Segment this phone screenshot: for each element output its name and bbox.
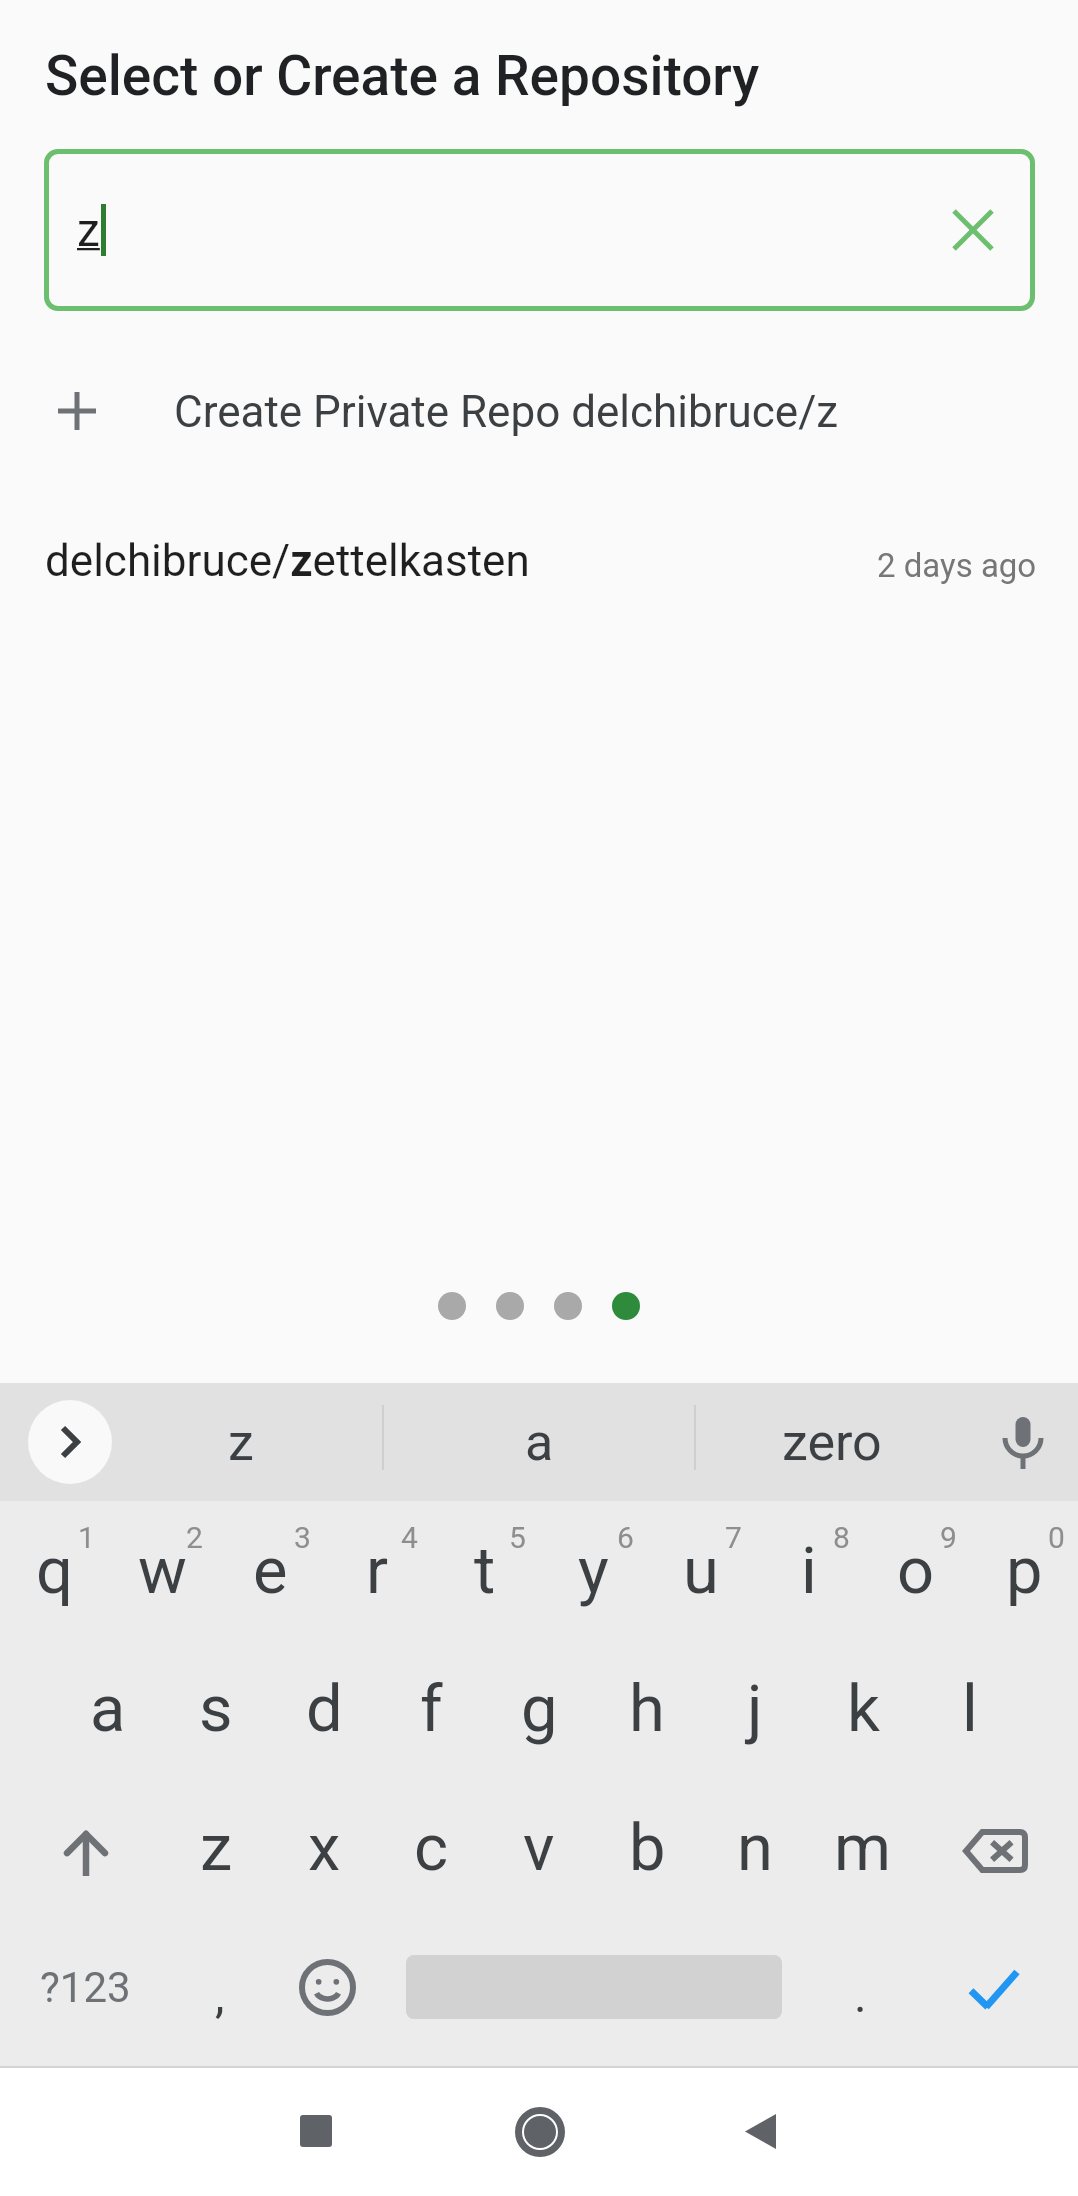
button[interactable]: Back — [692, 2067, 828, 2195]
button[interactable]: Clear search — [931, 188, 1015, 272]
staticText: j — [747, 1671, 763, 1747]
button[interactable]: a — [54, 1640, 162, 1778]
button[interactable]: z — [118, 1383, 364, 1501]
staticText: 2 — [186, 1520, 203, 1555]
button[interactable]: i — [755, 1502, 863, 1640]
button[interactable]: c — [377, 1779, 485, 1917]
staticText: g — [521, 1671, 558, 1747]
staticText: delchibruce/zettelkasten — [45, 535, 530, 587]
button[interactable]: ?123 — [0, 1918, 170, 2056]
button[interactable]: , — [170, 1918, 270, 2056]
staticText: n — [737, 1810, 773, 1886]
button[interactable]: Recent apps — [248, 2067, 384, 2195]
staticText: t — [474, 1533, 496, 1609]
button[interactable]: x — [270, 1779, 378, 1917]
button[interactable]: z — [162, 1779, 270, 1917]
staticText: 2 days ago — [877, 546, 1037, 585]
staticText: f — [420, 1671, 443, 1747]
staticText: q — [36, 1533, 73, 1609]
button[interactable]: g — [485, 1640, 593, 1778]
button[interactable]: q — [0, 1502, 108, 1640]
button[interactable]: Emoji — [274, 1918, 380, 2056]
button[interactable]: v — [485, 1779, 593, 1917]
button[interactable]: d — [270, 1640, 378, 1778]
staticText: a — [90, 1671, 126, 1747]
staticText: 1 — [78, 1520, 95, 1555]
staticText: 0 — [1048, 1520, 1065, 1555]
staticText: 9 — [940, 1520, 957, 1555]
staticText: s — [199, 1671, 233, 1747]
button[interactable]: Page 1 — [438, 1292, 466, 1320]
button[interactable]: j — [701, 1640, 809, 1778]
button[interactable]: o — [862, 1502, 970, 1640]
button[interactable]: t — [431, 1502, 539, 1640]
staticText: , — [215, 1967, 225, 2023]
staticText: 5 — [509, 1520, 526, 1555]
staticText: 4 — [401, 1520, 418, 1555]
staticText: u — [683, 1533, 719, 1609]
button[interactable]: a — [384, 1383, 694, 1501]
staticText: d — [306, 1671, 343, 1747]
staticText: k — [847, 1671, 880, 1747]
button[interactable]: z — [44, 149, 1035, 311]
staticText: b — [629, 1810, 666, 1886]
staticText: y — [578, 1533, 609, 1609]
staticText: 3 — [294, 1520, 311, 1555]
button[interactable]: delchibruce/zettelkasten — [0, 516, 1078, 606]
staticText: ?123 — [40, 1963, 131, 2012]
button[interactable]: Backspace — [916, 1779, 1078, 1917]
staticText: c — [414, 1810, 449, 1886]
staticText: i — [801, 1533, 817, 1609]
staticText: 8 — [833, 1520, 850, 1555]
staticText: Create Private Repo delchibruce/z — [174, 386, 839, 438]
button[interactable]: l — [916, 1640, 1024, 1778]
button[interactable]: b — [593, 1779, 701, 1917]
staticText: 7 — [725, 1520, 742, 1555]
staticText: o — [897, 1533, 935, 1609]
button[interactable]: m — [809, 1779, 917, 1917]
button[interactable]: h — [593, 1640, 701, 1778]
staticText: v — [523, 1810, 555, 1886]
button[interactable]: . — [808, 1918, 912, 2056]
staticText: e — [253, 1533, 288, 1609]
staticText: x — [308, 1810, 341, 1886]
staticText: a — [525, 1412, 554, 1473]
button[interactable]: zero — [696, 1383, 968, 1501]
button[interactable]: r — [323, 1502, 431, 1640]
staticText: m — [834, 1810, 892, 1886]
button[interactable]: Page 4 — [612, 1292, 640, 1320]
button[interactable]: k — [809, 1640, 917, 1778]
button[interactable]: Enter — [912, 1918, 1078, 2056]
staticText: 6 — [617, 1520, 634, 1555]
staticText: Select or Create a Repository — [45, 44, 760, 108]
button[interactable]: p — [970, 1502, 1078, 1640]
button[interactable]: Page 3 — [554, 1292, 582, 1320]
button[interactable]: Space — [380, 1918, 808, 2056]
staticText: z — [200, 1810, 233, 1886]
button[interactable]: Expand suggestions — [28, 1400, 112, 1484]
button[interactable]: s — [162, 1640, 270, 1778]
button[interactable]: f — [377, 1640, 485, 1778]
staticText: r — [366, 1533, 389, 1609]
staticText: z — [228, 1412, 254, 1473]
staticText: . — [854, 1967, 867, 2023]
button[interactable]: Shift — [0, 1779, 162, 1917]
staticText: w — [138, 1533, 187, 1609]
staticText: p — [1006, 1533, 1043, 1609]
button[interactable]: w — [108, 1502, 216, 1640]
staticText: h — [629, 1671, 665, 1747]
staticText: l — [962, 1671, 978, 1747]
button[interactable]: n — [701, 1779, 809, 1917]
staticText: z — [77, 203, 100, 257]
staticText: zero — [782, 1412, 882, 1473]
button[interactable]: Home — [472, 2068, 608, 2196]
button[interactable]: y — [539, 1502, 647, 1640]
button[interactable]: u — [647, 1502, 755, 1640]
button[interactable]: Voice input — [968, 1383, 1078, 1501]
button[interactable]: e — [216, 1502, 324, 1640]
button[interactable]: Create Private Repo delchibruce/z — [0, 364, 1078, 460]
button[interactable]: Page 2 — [496, 1292, 524, 1320]
